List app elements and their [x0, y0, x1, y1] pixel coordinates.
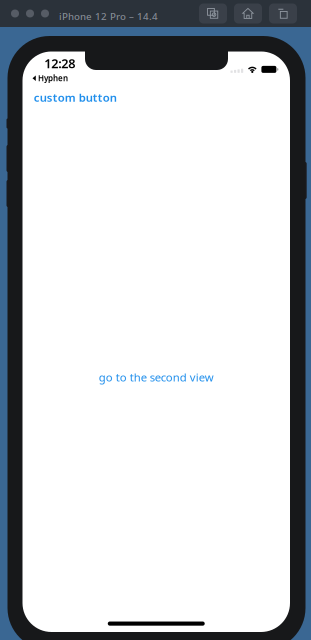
- staticText: iPhone 12 Pro – 14.4: [59, 9, 158, 23]
- staticText: go to the second view: [99, 369, 214, 385]
- button[interactable]: Record screen: [269, 3, 297, 23]
- button[interactable]: Home: [234, 3, 262, 23]
- button[interactable]: Hyphen: [31, 72, 69, 85]
- button[interactable]: Close window: [11, 9, 19, 17]
- staticText: Hyphen: [38, 73, 68, 84]
- button[interactable]: Screenshot: [199, 3, 227, 23]
- button[interactable]: Minimize window: [26, 9, 34, 17]
- button[interactable]: Zoom window: [41, 9, 49, 17]
- button[interactable]: go to the second view: [96, 366, 217, 388]
- staticText: 12:28: [44, 55, 75, 72]
- staticText: custom button: [34, 90, 117, 105]
- button[interactable]: custom button: [32, 88, 119, 107]
